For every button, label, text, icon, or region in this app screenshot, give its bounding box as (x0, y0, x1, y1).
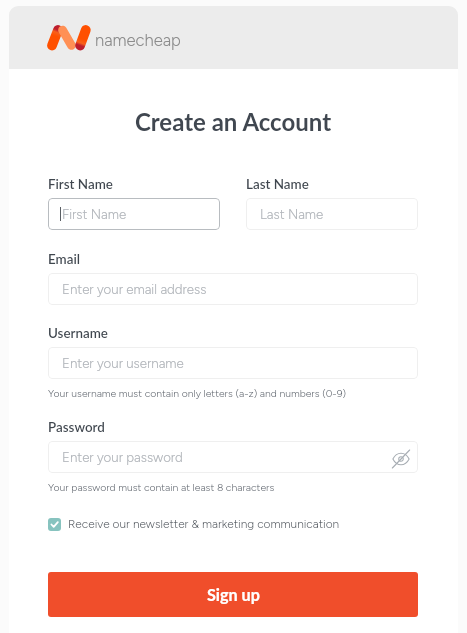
button[interactable]: Enter your email address (48, 273, 418, 305)
button[interactable]: First Name (48, 198, 220, 230)
staticText: Enter your username (62, 355, 184, 371)
button[interactable]: Sign up (48, 572, 418, 617)
staticText: Your username must contain only letters … (48, 387, 347, 399)
button[interactable]: Show password (390, 448, 412, 470)
button[interactable]: Last Name (246, 198, 418, 230)
button[interactable]: Enter your username (48, 347, 418, 379)
button[interactable]: Receive our newsletter & marketing commu… (48, 517, 418, 531)
staticText: First Name (48, 176, 113, 192)
button[interactable]: Enter your password (48, 441, 418, 473)
staticText: namecheap (95, 30, 181, 50)
staticText: Receive our newsletter & marketing commu… (68, 517, 340, 531)
staticText: Enter your password (62, 449, 183, 465)
staticText: Email (48, 251, 80, 267)
staticText: Enter your email address (62, 281, 207, 297)
staticText: Your password must contain at least 8 ch… (48, 481, 275, 493)
staticText: Last Name (246, 176, 309, 192)
staticText: Password (48, 419, 105, 435)
staticText: First Name (62, 206, 127, 222)
staticText: Last Name (260, 206, 324, 222)
staticText: Username (48, 325, 108, 341)
staticText: Sign up (207, 585, 260, 604)
staticText: Create an Account (48, 107, 418, 136)
